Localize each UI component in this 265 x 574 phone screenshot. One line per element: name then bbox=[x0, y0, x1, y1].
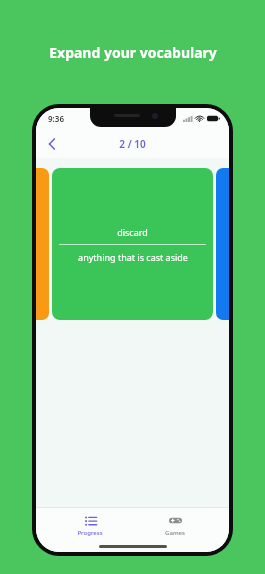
staticText: discard bbox=[117, 226, 148, 238]
staticText: anything that is cast aside bbox=[78, 251, 188, 263]
staticText: Games bbox=[165, 529, 185, 537]
button[interactable]: Games bbox=[144, 512, 206, 539]
button[interactable]: Back bbox=[40, 132, 63, 155]
staticText: Expand your vocabulary bbox=[49, 43, 217, 62]
button[interactable]: Progress bbox=[59, 512, 121, 539]
staticText: 9:36 bbox=[48, 113, 64, 124]
button[interactable]: Next word bbox=[216, 168, 229, 320]
staticText: 2 / 10 bbox=[119, 137, 146, 151]
button[interactable]: Previous word bbox=[36, 168, 49, 320]
button[interactable]: discard bbox=[52, 168, 213, 320]
staticText: Progress bbox=[77, 529, 103, 537]
